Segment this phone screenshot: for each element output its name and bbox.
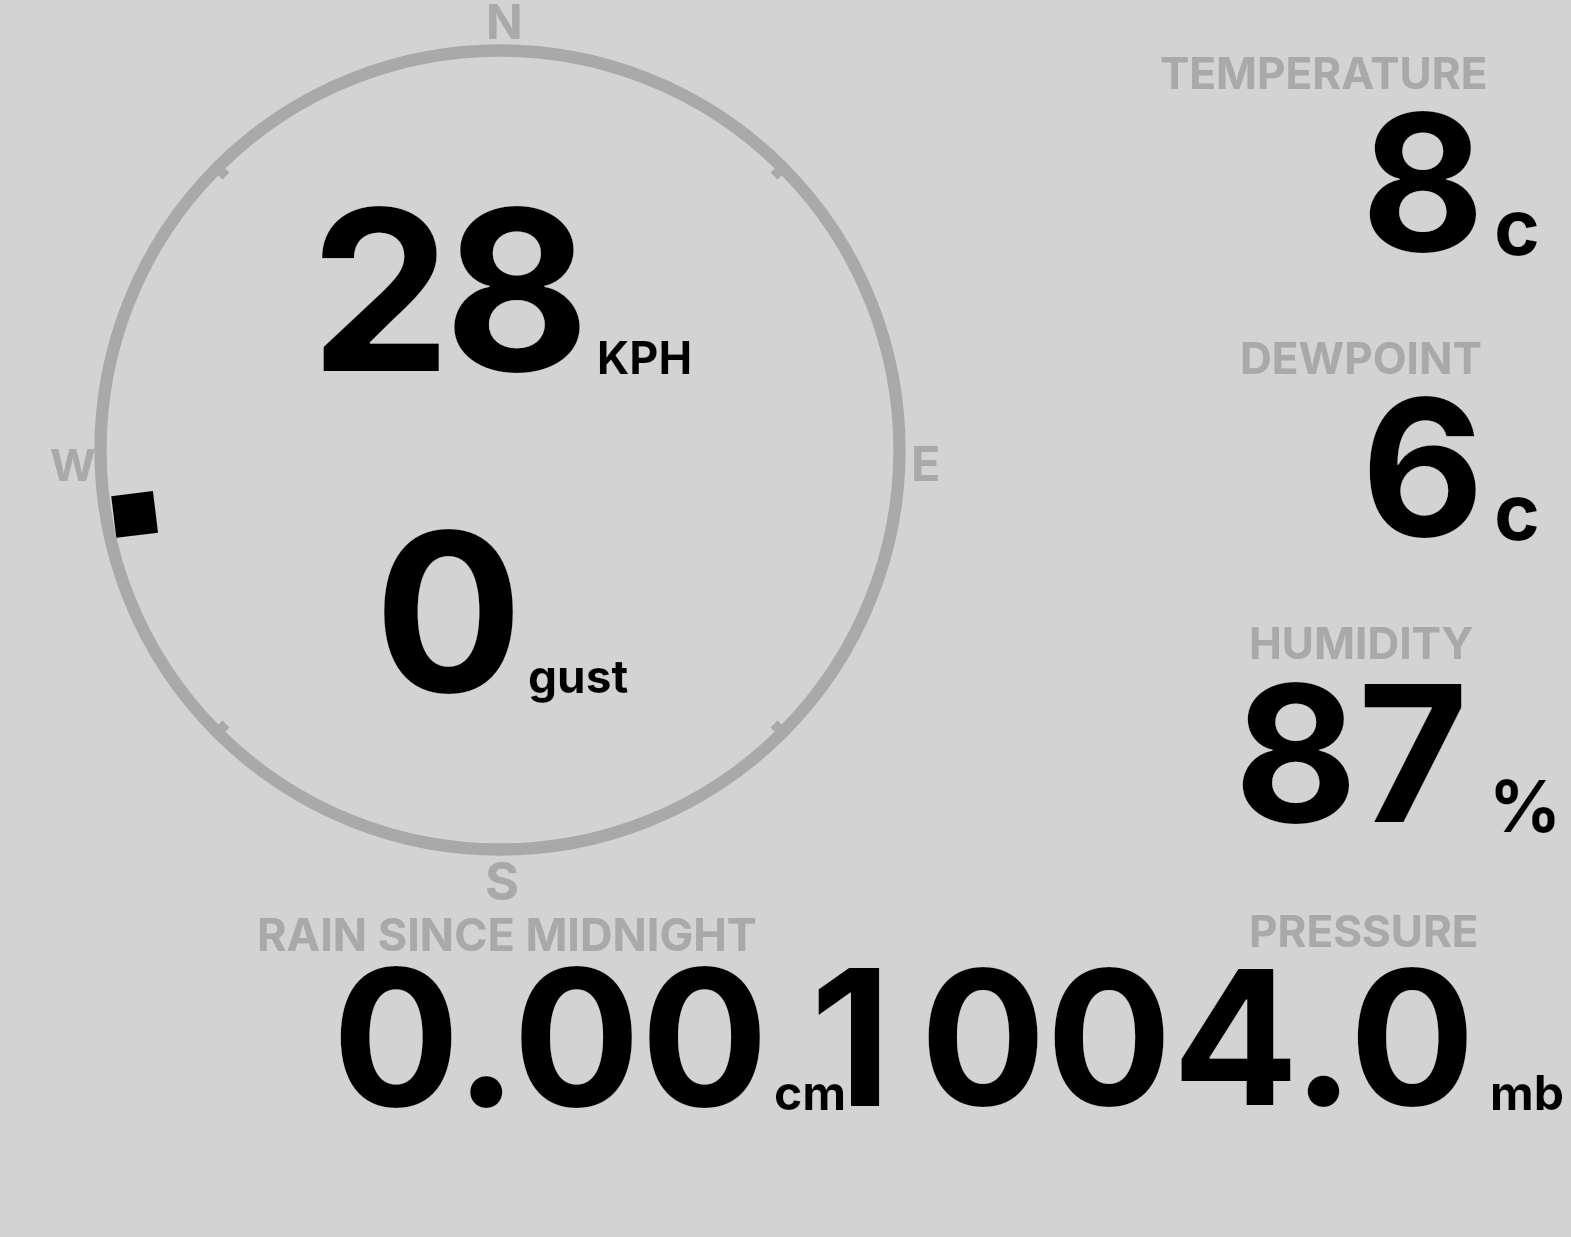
staticText: 0: [374, 478, 524, 745]
staticText: N: [486, 0, 523, 50]
staticText: PRESSURE: [1249, 904, 1479, 957]
staticText: HUMIDITY: [1249, 616, 1474, 669]
staticText: 8: [444, 154, 590, 425]
staticText: RAIN SINCE MIDNIGHT: [257, 907, 757, 961]
staticText: 8: [1361, 67, 1485, 297]
button[interactable]: Wind 28 kilometres per hour, gust 0, dir…: [95, 46, 905, 856]
staticText: c: [1494, 179, 1540, 273]
staticText: mb: [1490, 1063, 1565, 1121]
staticText: KPH: [597, 330, 693, 384]
staticText: DEWPOINT: [1240, 331, 1482, 384]
staticText: 87: [1234, 638, 1469, 868]
staticText: 004.0: [920, 924, 1476, 1150]
button[interactable]: Rain since midnight 0.00 centimetres: [240, 890, 860, 1130]
staticText: 2: [310, 154, 452, 425]
button[interactable]: Pressure 1004.0 millibars: [870, 890, 1570, 1130]
staticText: TEMPERATURE: [1160, 46, 1488, 99]
staticText: %: [1489, 763, 1562, 849]
staticText: 1: [810, 923, 892, 1152]
button[interactable]: Humidity 87 percent: [1100, 600, 1571, 870]
staticText: cm: [774, 1063, 847, 1121]
staticText: gust: [528, 648, 629, 704]
staticText: c: [1494, 464, 1540, 558]
staticText: 0.00: [332, 922, 769, 1152]
button[interactable]: Dewpoint 6 degrees Celsius: [1100, 315, 1571, 585]
staticText: S: [485, 850, 520, 913]
staticText: 6: [1361, 352, 1485, 582]
button[interactable]: Temperature 8 degrees Celsius: [1100, 30, 1571, 300]
staticText: W: [50, 438, 96, 491]
staticText: E: [911, 434, 941, 492]
